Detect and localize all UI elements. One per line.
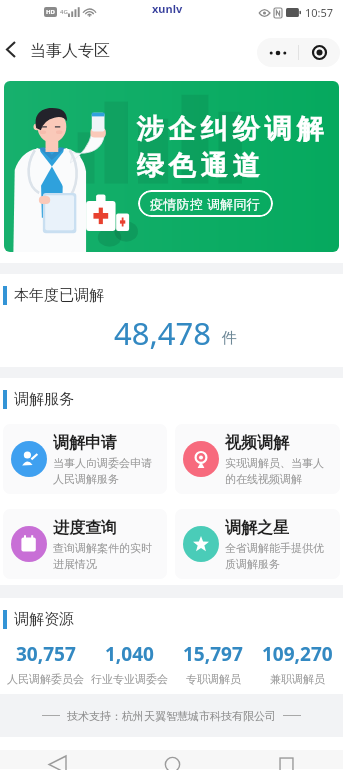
- staticText: 涉企纠纷调解: [134, 112, 326, 146]
- button[interactable]: Close: [299, 38, 340, 67]
- staticText: 全省调解能手提供优 质调解服务: [225, 541, 324, 571]
- staticText: 当事人专区: [30, 41, 110, 61]
- button[interactable]: Back: [0, 750, 115, 769]
- staticText: 15,797: [183, 641, 243, 667]
- staticText: 行业专业调委会: [91, 672, 168, 686]
- staticText: 当事人向调委会申请 人民调解服务: [53, 456, 152, 486]
- button[interactable]: 进度查询: [3, 509, 167, 579]
- staticText: 技术支持：杭州天翼智慧城市科技有限公司: [67, 709, 276, 723]
- staticText: 绿色通道: [134, 149, 262, 183]
- staticText: 专职调解员: [186, 672, 241, 686]
- staticText: 疫情防控 调解同行: [150, 195, 261, 213]
- staticText: 本年度已调解: [14, 286, 104, 305]
- staticText: 109,270: [262, 641, 333, 667]
- button[interactable]: 15,797: [171, 641, 255, 686]
- staticText: 实现调解员、当事人 的在线视频调解: [225, 456, 324, 486]
- button[interactable]: Home: [115, 750, 229, 769]
- staticText: 查询调解案件的实时 进展情况: [53, 541, 152, 571]
- button[interactable]: 109,270: [255, 641, 339, 686]
- staticText: 兼职调解员: [270, 672, 325, 686]
- staticText: 48,478: [114, 312, 211, 354]
- staticText: 10:57: [305, 5, 334, 20]
- staticText: 调解资源: [14, 610, 74, 629]
- staticText: 件: [222, 329, 237, 348]
- staticText: xunlv: [152, 1, 183, 16]
- staticText: 调解之星: [225, 518, 289, 538]
- button[interactable]: Recents: [229, 750, 343, 769]
- button[interactable]: More: [257, 38, 298, 67]
- staticText: 视频调解: [225, 433, 289, 453]
- button[interactable]: 调解申请: [3, 424, 167, 494]
- button[interactable]: 1,040: [87, 641, 171, 686]
- staticText: HD: [46, 8, 55, 16]
- staticText: 进度查询: [53, 518, 117, 538]
- button[interactable]: 30,757: [4, 641, 87, 686]
- button[interactable]: Back: [0, 33, 30, 65]
- button[interactable]: 视频调解: [175, 424, 340, 494]
- staticText: 人民调解委员会: [7, 672, 84, 686]
- staticText: 30,757: [16, 641, 76, 667]
- staticText: 调解服务: [14, 390, 74, 409]
- staticText: 调解申请: [53, 433, 117, 453]
- staticText: 1,040: [105, 641, 154, 667]
- button[interactable]: 调解之星: [175, 509, 340, 579]
- button[interactable]: 涉企纠纷调解: [4, 81, 339, 252]
- staticText: 4G: [60, 8, 68, 16]
